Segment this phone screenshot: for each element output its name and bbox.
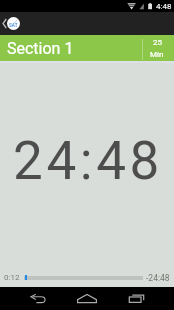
- button[interactable]: Navigate up: [0, 17, 24, 30]
- button[interactable]: Recent apps: [118, 287, 154, 310]
- button[interactable]: Back: [20, 287, 56, 310]
- button[interactable]: Seek position: [24, 270, 143, 287]
- staticText: SAT: [9, 23, 18, 28]
- staticText: 4:48: [156, 2, 172, 11]
- staticText: 24:48: [13, 130, 163, 192]
- staticText: -24:48: [146, 273, 170, 283]
- staticText: Section 1: [7, 39, 74, 58]
- staticText: 0:12: [4, 273, 20, 282]
- button[interactable]: Home: [69, 287, 105, 310]
- staticText: Min: [150, 50, 164, 59]
- staticText: 25: [153, 38, 162, 47]
